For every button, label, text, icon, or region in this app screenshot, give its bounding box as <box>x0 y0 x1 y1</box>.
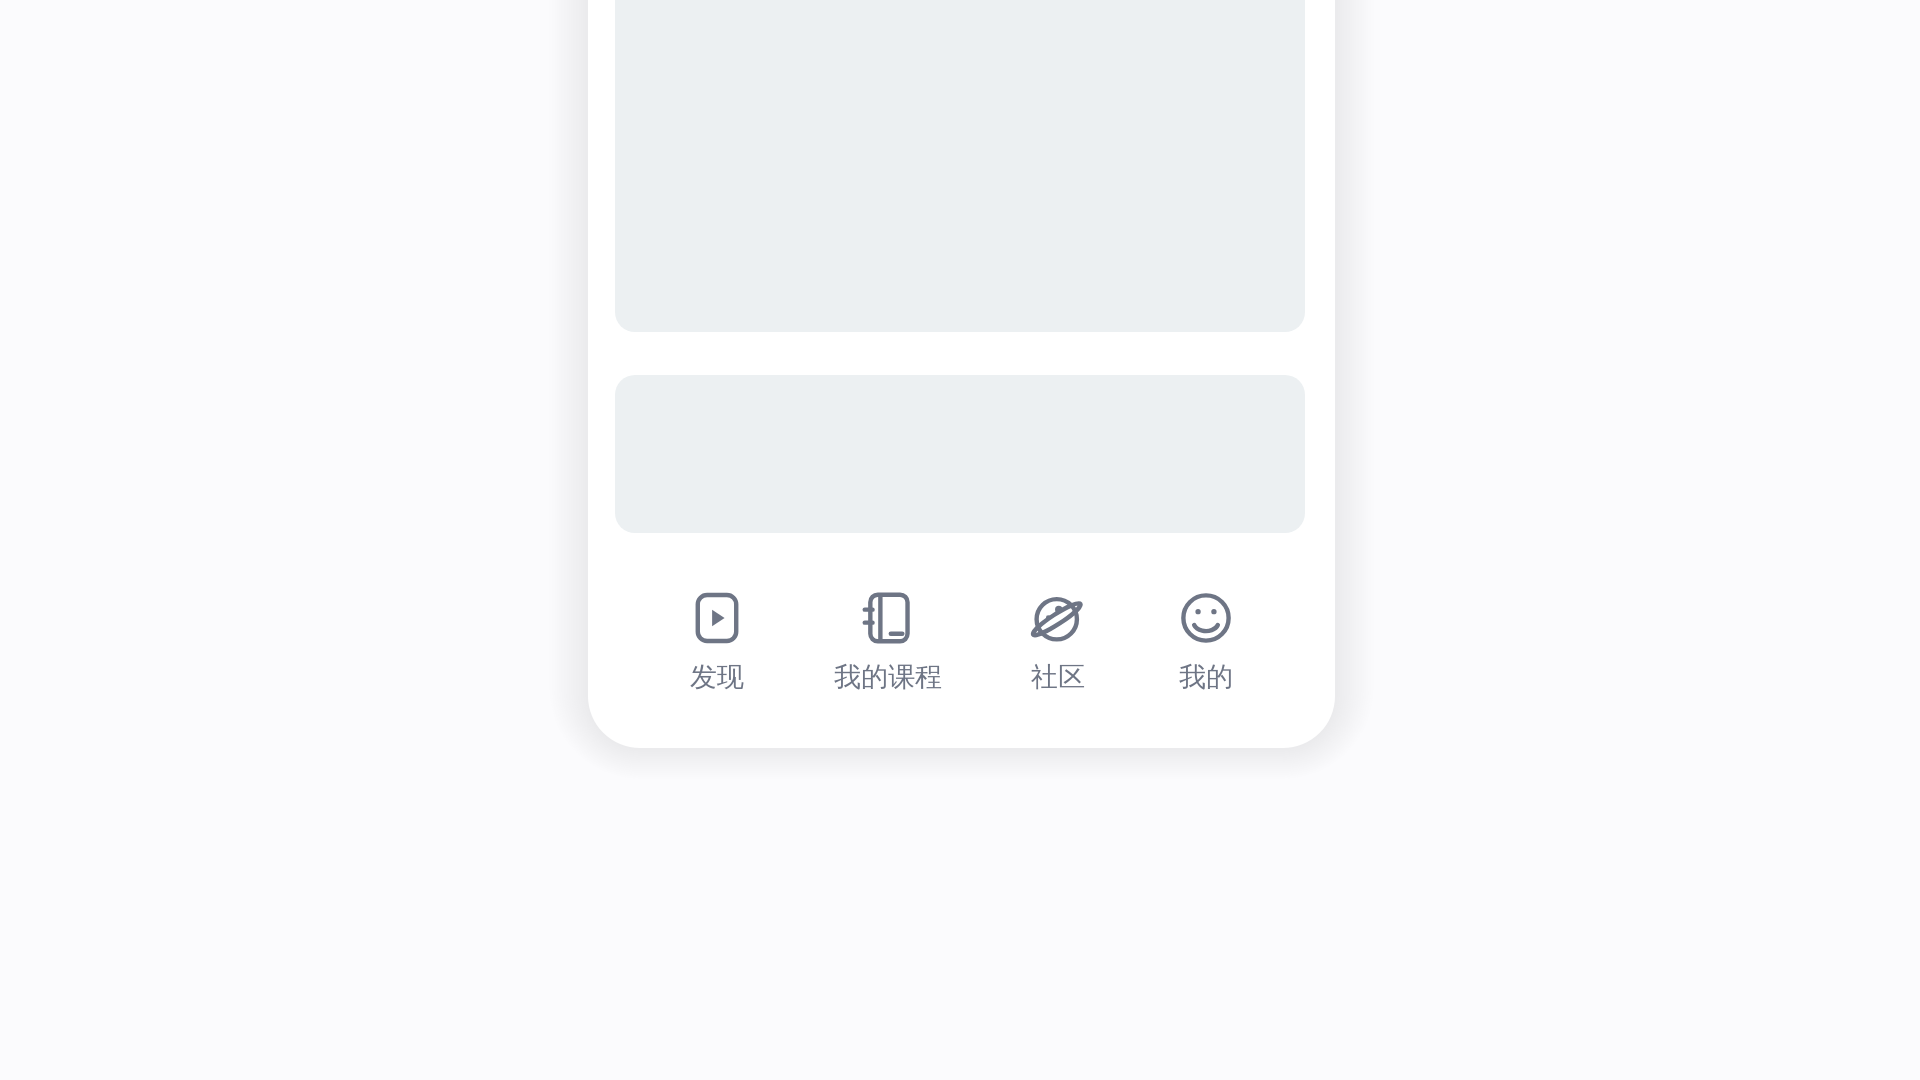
button[interactable]: My Courses <box>824 556 952 704</box>
staticText: 社区 <box>1031 660 1085 694</box>
button[interactable]: Discover <box>676 556 758 704</box>
button[interactable]: Community <box>1017 556 1099 704</box>
staticText: 我的课程 <box>834 660 942 694</box>
staticText: 发现 <box>690 660 744 694</box>
staticText: 我的 <box>1179 660 1233 694</box>
button[interactable]: Profile <box>1165 556 1247 704</box>
